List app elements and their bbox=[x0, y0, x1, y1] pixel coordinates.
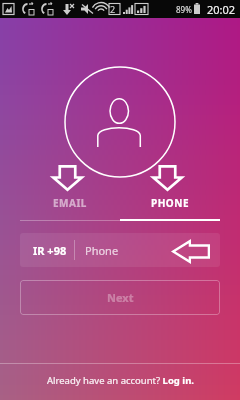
staticText: Next bbox=[107, 290, 134, 305]
button[interactable]: PHONE bbox=[120, 196, 220, 218]
staticText: 20:02 bbox=[207, 2, 236, 17]
staticText: 89% bbox=[176, 4, 192, 15]
button[interactable]: IR +98 bbox=[20, 233, 220, 267]
button[interactable]: Already have an account? Log in. bbox=[0, 365, 240, 396]
other: Enter phone number bbox=[172, 240, 210, 263]
button[interactable]: Next bbox=[20, 280, 220, 315]
staticText: PHONE bbox=[151, 196, 189, 210]
staticText: Already have an account? Log in. bbox=[47, 374, 194, 387]
staticText: Phone bbox=[85, 243, 119, 258]
staticText: IR +98 bbox=[33, 243, 67, 258]
staticText: 2 bbox=[110, 3, 116, 15]
staticText: EMAIL bbox=[53, 196, 87, 210]
button[interactable]: EMAIL bbox=[20, 196, 120, 218]
